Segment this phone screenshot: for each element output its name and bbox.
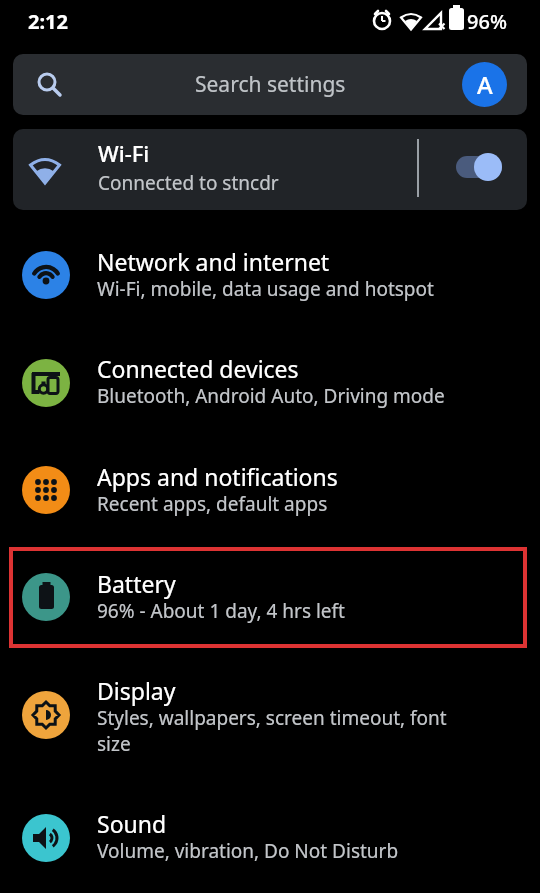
staticText: Search settings <box>195 70 346 99</box>
staticText: Volume, vibration, Do Not Disturb <box>97 838 399 864</box>
staticText: Connected to stncdr <box>98 170 279 196</box>
button[interactable]: A <box>462 62 507 107</box>
staticText: Network and internet <box>97 246 330 277</box>
staticText: Display <box>97 675 176 706</box>
button[interactable]: Wi-Fi <box>13 129 527 210</box>
staticText: Apps and notifications <box>97 461 338 492</box>
staticText: Recent apps, default apps <box>97 491 328 517</box>
button[interactable]: Connected devices <box>0 329 540 437</box>
staticText: 96% <box>467 8 507 35</box>
button[interactable]: Battery <box>0 544 540 651</box>
staticText: 2:12 <box>28 8 68 35</box>
staticText: Sound <box>97 808 167 839</box>
staticText: Connected devices <box>97 353 299 384</box>
staticText: Bluetooth, Android Auto, Driving mode <box>97 383 445 409</box>
staticText: Styles, wallpapers, screen timeout, font <box>97 705 447 731</box>
button[interactable]: Search settings <box>13 54 527 115</box>
button[interactable]: Network and internet <box>0 222 540 329</box>
button[interactable] <box>456 156 502 178</box>
staticText: size <box>97 731 131 757</box>
staticText: Wi-Fi <box>98 138 150 168</box>
button[interactable]: Display <box>0 651 540 784</box>
staticText: Wi-Fi, mobile, data usage and hotspot <box>97 276 434 302</box>
staticText: Battery <box>97 568 176 599</box>
button[interactable]: Apps and notifications <box>0 437 540 544</box>
staticText: 96% - About 1 day, 4 hrs left <box>97 598 345 624</box>
staticText: A <box>477 68 493 101</box>
button[interactable]: Sound <box>0 784 540 893</box>
